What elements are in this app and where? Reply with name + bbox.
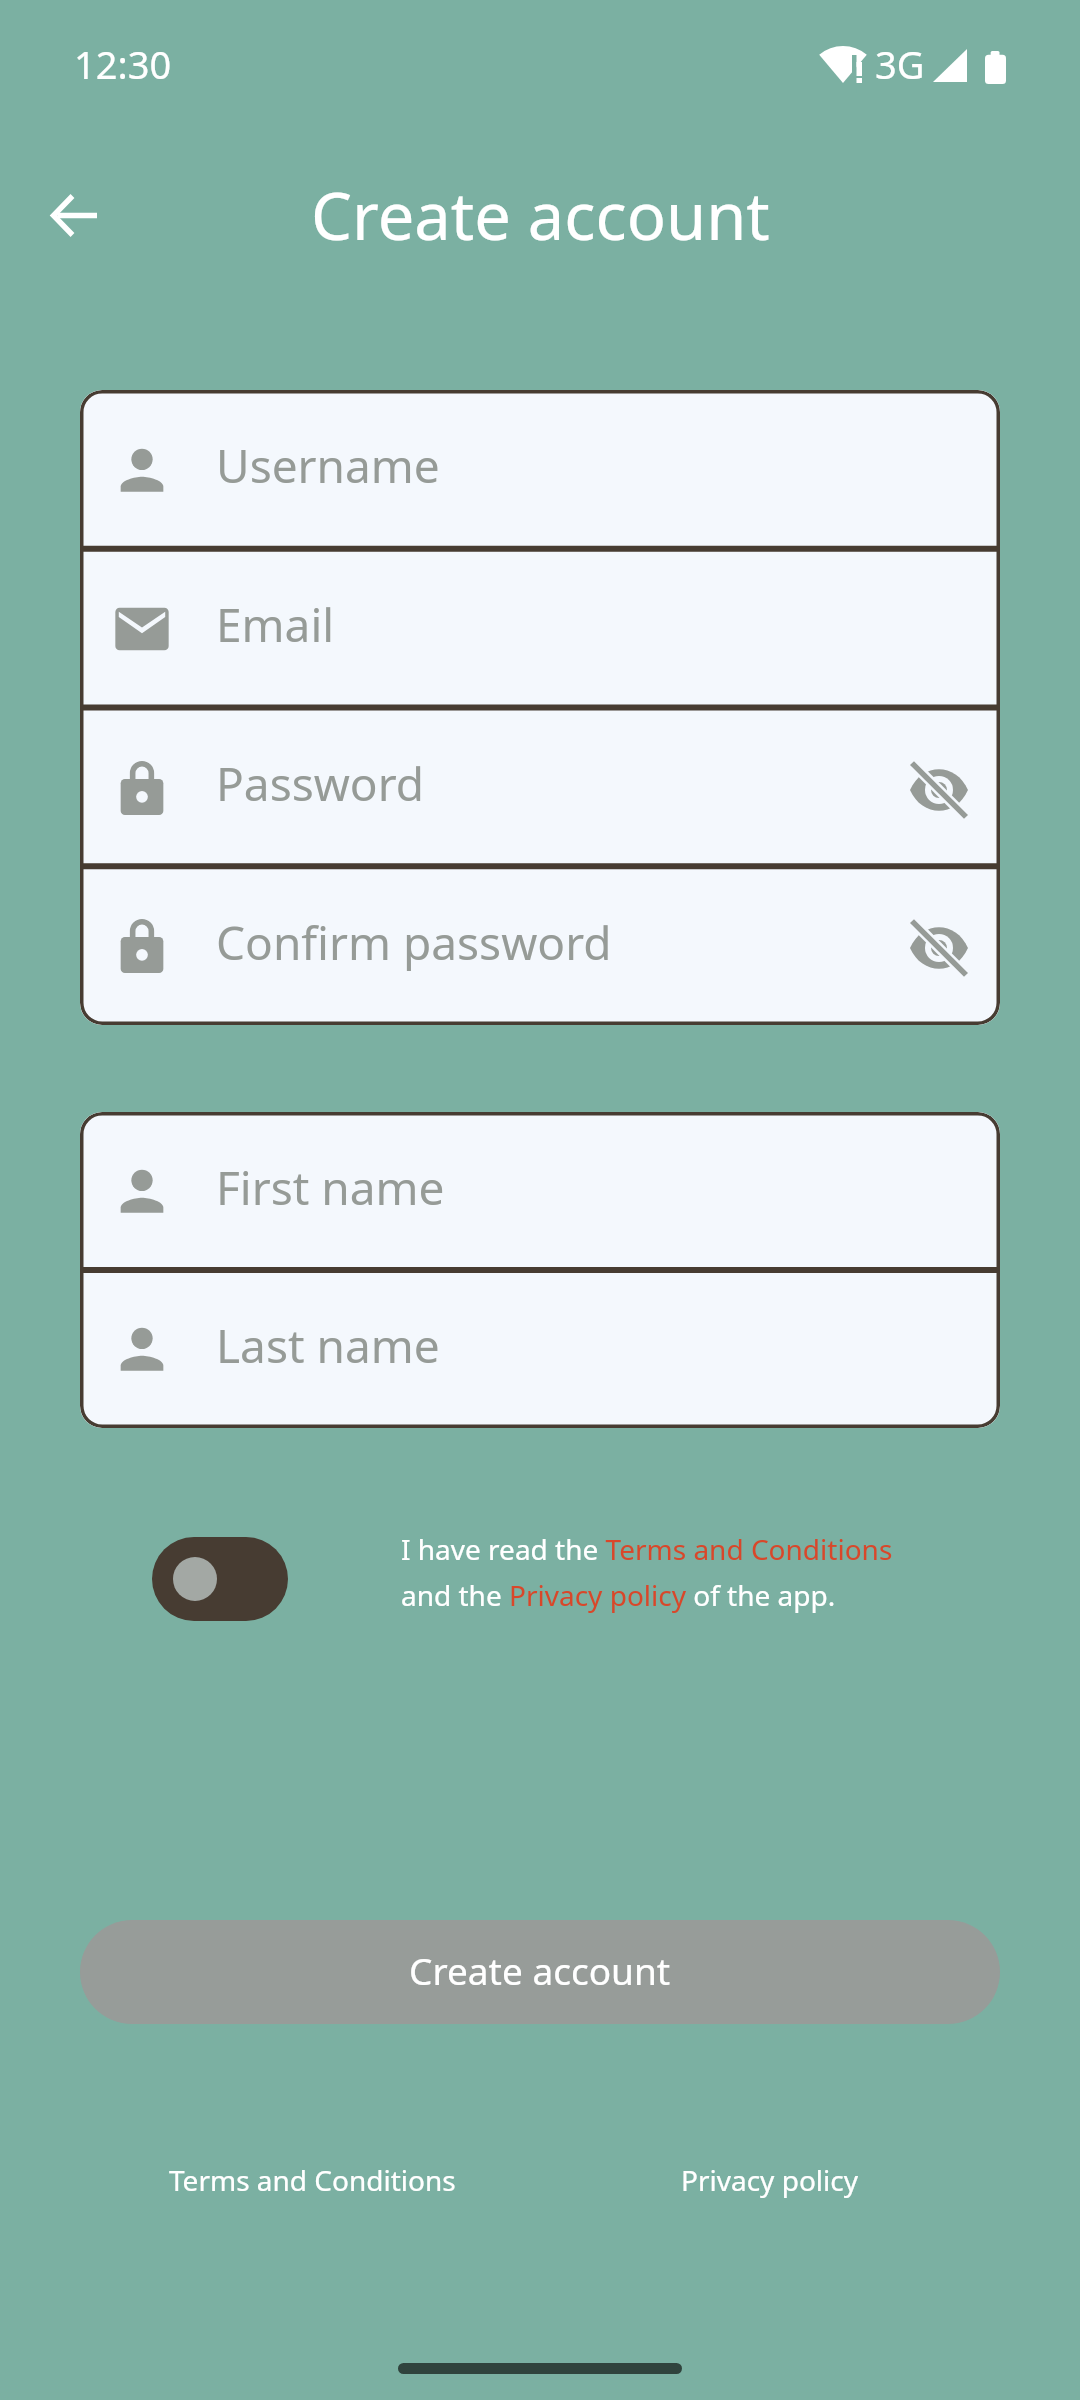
staticText: I have read the Terms and Conditions and…	[401, 1530, 901, 1614]
button[interactable]: Back	[30, 170, 120, 260]
staticText: First name	[216, 1156, 445, 1219]
staticText: Confirm password	[216, 911, 612, 974]
staticText: Create account	[409, 1945, 671, 1995]
button[interactable]: Privacy policy	[681, 2161, 858, 2199]
staticText: Create account	[311, 171, 770, 260]
staticText: Privacy policy	[681, 2161, 858, 2199]
button[interactable]: First name	[80, 1112, 1000, 1270]
button[interactable]: Email	[80, 549, 1000, 708]
button[interactable]: Show password	[883, 734, 995, 846]
staticText: Last name	[216, 1314, 440, 1377]
button[interactable]: Create account	[80, 1920, 1000, 2024]
button[interactable]: Username	[80, 390, 1000, 549]
button[interactable]: I accept the terms and conditions	[152, 1537, 288, 1621]
button[interactable]: Confirm password	[80, 867, 1000, 1025]
staticText: Terms and Conditions	[169, 2161, 456, 2199]
button[interactable]: Password	[80, 708, 1000, 867]
staticText: Password	[216, 752, 425, 815]
button[interactable]: Last name	[80, 1270, 1000, 1428]
staticText: Email	[216, 593, 335, 656]
staticText: 3G	[875, 38, 925, 90]
staticText: 12:30	[74, 38, 172, 90]
button[interactable]: Show password	[883, 892, 995, 1004]
staticText: Username	[216, 434, 440, 497]
button[interactable]: Terms and Conditions	[169, 2161, 456, 2199]
